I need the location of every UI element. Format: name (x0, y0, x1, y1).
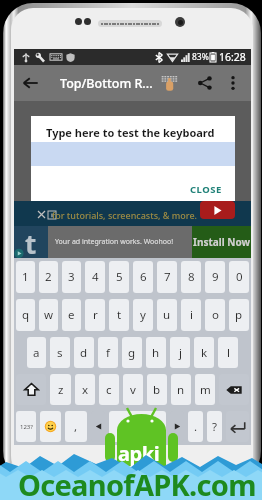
button[interactable] (109, 411, 166, 442)
staticText: 2 (45, 269, 52, 285)
button[interactable]: 6 (133, 261, 153, 293)
button[interactable]: Cursor left (91, 411, 105, 442)
staticText: for tutorials, screencasts, & more. (52, 209, 198, 221)
button[interactable]: ? (207, 411, 222, 442)
button[interactable]: Shift (16, 374, 46, 405)
button[interactable]: b (147, 374, 167, 405)
button[interactable]: v (123, 374, 143, 405)
staticText: d (80, 345, 88, 361)
staticText: j (179, 345, 182, 361)
staticText: 3 (68, 269, 75, 285)
button[interactable]: o (205, 299, 225, 331)
button[interactable]: 5 (109, 261, 129, 293)
staticText: 1 (22, 269, 29, 285)
button[interactable]: z (50, 374, 71, 405)
button[interactable]: Advertiser (14, 226, 48, 258)
button[interactable]: Play video (200, 183, 235, 201)
button[interactable]: 8 (181, 261, 201, 293)
button[interactable]: g (122, 337, 142, 368)
button[interactable]: Show keyboard (155, 65, 183, 101)
button[interactable]: Install Now (192, 226, 251, 258)
staticText: p (235, 307, 243, 323)
button[interactable]: m (195, 374, 215, 405)
staticText: 5 (116, 269, 123, 285)
button[interactable]: s (50, 337, 70, 368)
button[interactable]: p (229, 299, 249, 331)
staticText: e (68, 307, 75, 323)
button[interactable]: w (39, 299, 58, 331)
staticText: Top/Bottom R... (60, 75, 153, 92)
button[interactable]: Enter (226, 411, 249, 442)
button[interactable]: 3 (62, 261, 81, 293)
button[interactable]: 7 (157, 261, 177, 293)
button[interactable]: . (188, 411, 203, 442)
staticText: apki (118, 440, 160, 467)
button[interactable]: u (157, 299, 177, 331)
button[interactable]: n (171, 374, 191, 405)
button[interactable]: 2 (39, 261, 58, 293)
staticText: y (140, 307, 146, 323)
staticText: CLOSE (190, 183, 222, 196)
button[interactable]: Play (200, 201, 235, 219)
staticText: h (152, 345, 160, 361)
button[interactable]: Close ad (36, 209, 47, 220)
button[interactable]: Emoji (40, 411, 61, 442)
button[interactable]: 123? (16, 411, 36, 442)
button[interactable]: y (133, 299, 153, 331)
staticText: Your ad integration works. Woohoo! (55, 237, 174, 247)
staticText: r (93, 307, 98, 323)
staticText: 9 (212, 269, 219, 285)
button[interactable]: f (98, 337, 118, 368)
staticText: OceanofAPK.com (18, 465, 256, 500)
button[interactable]: i (181, 299, 201, 331)
staticText: t (117, 307, 122, 323)
staticText: . (194, 419, 198, 435)
staticText: i (190, 307, 193, 323)
button[interactable]: k (194, 337, 214, 368)
button[interactable]: 0 (229, 261, 249, 293)
staticText: w (44, 307, 54, 323)
staticText: a (33, 345, 40, 361)
staticText: , (74, 419, 78, 435)
staticText: u (163, 307, 171, 323)
button[interactable]: Cursor right (170, 411, 184, 442)
staticText: Type here to test the keyboard (46, 125, 215, 140)
button[interactable]: l (218, 337, 238, 368)
button[interactable]: q (16, 299, 35, 331)
staticText: c (106, 382, 112, 398)
button[interactable]: Your ad integration works. Woohoo! (48, 226, 192, 258)
staticText: m (200, 382, 211, 398)
button[interactable]: j (170, 337, 190, 368)
button[interactable]: t (109, 299, 129, 331)
staticText: s (57, 345, 63, 361)
staticText: 8 (188, 269, 195, 285)
staticText: 0 (236, 269, 243, 285)
button[interactable]: x (75, 374, 95, 405)
staticText: v (130, 382, 136, 398)
button[interactable]: Backspace (219, 374, 249, 405)
button[interactable]: 9 (205, 261, 225, 293)
button[interactable]: Ad info (46, 209, 57, 220)
staticText: 123? (20, 423, 33, 431)
button[interactable]: d (74, 337, 94, 368)
button[interactable]: c (99, 374, 119, 405)
staticText: 4 (92, 269, 99, 285)
button[interactable]: Back (14, 65, 46, 101)
button[interactable]: , (65, 411, 87, 442)
staticText: x (82, 382, 89, 398)
staticText: l (227, 345, 230, 361)
button[interactable]: 1 (16, 261, 35, 293)
staticText: b (153, 382, 161, 398)
staticText: 6 (140, 269, 147, 285)
button[interactable]: h (146, 337, 166, 368)
button[interactable]: a (27, 337, 46, 368)
button[interactable]: r (85, 299, 105, 331)
staticText: 83% (192, 51, 209, 63)
staticText: t (25, 226, 37, 258)
button[interactable]: 4 (85, 261, 105, 293)
button[interactable]: More options (223, 65, 243, 101)
button[interactable]: Share (193, 65, 217, 101)
button[interactable]: CLOSE (182, 179, 230, 200)
button[interactable]: e (62, 299, 81, 331)
